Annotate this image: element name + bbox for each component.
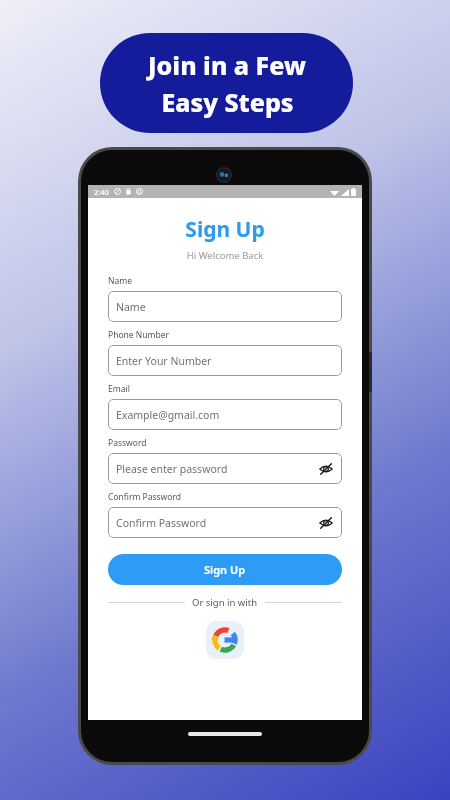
button[interactable]: Enter Your Number (108, 345, 342, 376)
button[interactable]: Please enter password (108, 453, 342, 484)
staticText: Please enter password (116, 462, 318, 476)
staticText: Hi Welcome Back (88, 249, 362, 262)
button[interactable]: Toggle password visibility (318, 461, 334, 477)
staticText: 2:40 (94, 187, 109, 197)
staticText: Or sign in with (192, 596, 258, 609)
staticText: Confirm Password (108, 491, 181, 503)
button[interactable]: Sign in with Google (206, 621, 244, 659)
staticText: Name (108, 275, 132, 287)
staticText: Email (108, 383, 130, 395)
staticText: Phone Number (108, 329, 169, 341)
staticText: Enter Your Number (116, 354, 334, 368)
staticText: Confirm Password (116, 516, 318, 530)
button[interactable]: Example@gmail.com (108, 399, 342, 430)
button[interactable]: Join in a Few (100, 33, 353, 133)
staticText: Password (108, 437, 147, 449)
staticText: Example@gmail.com (116, 408, 334, 422)
staticText: Join in a Few (148, 48, 306, 82)
staticText: Name (116, 300, 334, 314)
staticText: Easy Steps (161, 85, 294, 119)
staticText: Sign Up (204, 562, 246, 577)
button[interactable]: Confirm Password (108, 507, 342, 538)
button[interactable]: Toggle password visibility (318, 515, 334, 531)
button[interactable]: Sign Up (108, 554, 342, 585)
button[interactable]: Name (108, 291, 342, 322)
staticText: Sign Up (88, 215, 362, 244)
